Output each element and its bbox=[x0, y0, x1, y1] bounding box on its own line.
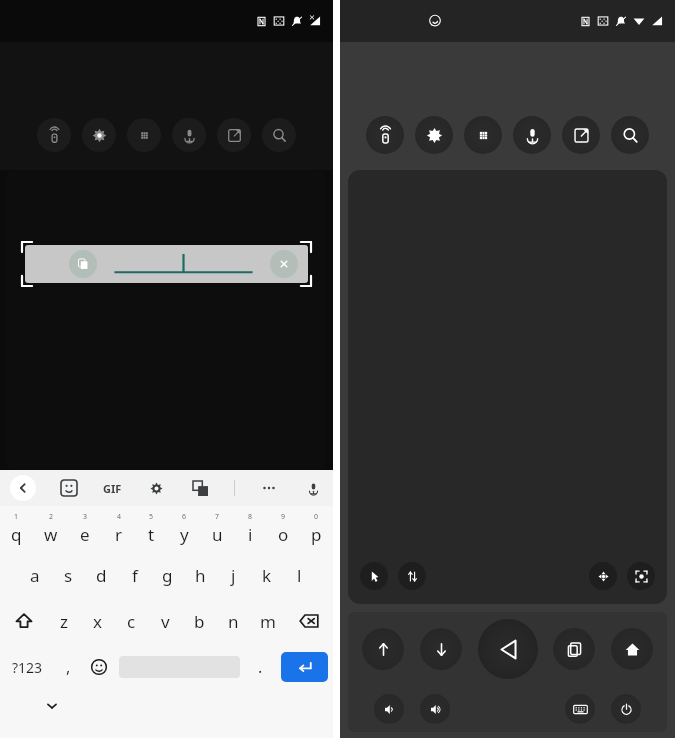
staticText: e bbox=[80, 523, 90, 546]
staticText: GIF bbox=[103, 481, 122, 496]
staticText: c bbox=[127, 610, 136, 633]
button[interactable]: Home bbox=[611, 628, 653, 670]
button[interactable]: Back bbox=[478, 619, 538, 679]
button[interactable]: Paste bbox=[25, 245, 308, 283]
button[interactable]: z bbox=[47, 598, 80, 644]
button[interactable]: Voice input bbox=[303, 478, 323, 498]
button[interactable]: n bbox=[217, 598, 250, 644]
button[interactable]: Voice bbox=[513, 116, 551, 154]
staticText: 7 bbox=[215, 512, 220, 522]
button[interactable]: Clear bbox=[270, 250, 298, 278]
staticText: d bbox=[96, 564, 107, 587]
button[interactable]: 5 bbox=[135, 506, 168, 552]
staticText: y bbox=[180, 523, 189, 546]
staticText: q bbox=[11, 523, 22, 546]
button[interactable]: D-pad bbox=[589, 562, 617, 590]
staticText: m bbox=[260, 610, 276, 633]
button[interactable]: Volume down bbox=[374, 694, 404, 724]
button[interactable]: Recents bbox=[553, 628, 595, 670]
button[interactable]: Hide keyboard bbox=[40, 694, 64, 718]
button[interactable]: g bbox=[151, 552, 184, 598]
button[interactable]: Open bbox=[562, 116, 600, 154]
button[interactable]: 2 bbox=[34, 506, 67, 552]
button[interactable]: Open bbox=[217, 118, 251, 152]
button[interactable]: 3 bbox=[68, 506, 101, 552]
button[interactable]: Scroll mode bbox=[398, 562, 426, 590]
button[interactable]: Focus bbox=[627, 562, 655, 590]
button[interactable]: ?123 bbox=[0, 644, 54, 690]
button[interactable]: Keyboard bbox=[565, 694, 595, 724]
staticText: w bbox=[44, 523, 58, 546]
button[interactable]: Search bbox=[262, 118, 296, 152]
button[interactable]: j bbox=[217, 552, 250, 598]
button[interactable]: m bbox=[251, 598, 284, 644]
button[interactable]: Emoji bbox=[83, 644, 115, 690]
staticText: f bbox=[132, 564, 138, 587]
button[interactable]: Remote bbox=[37, 118, 71, 152]
button[interactable]: Down bbox=[420, 628, 462, 670]
button[interactable]: 8 bbox=[234, 506, 267, 552]
button[interactable]: Settings bbox=[82, 118, 116, 152]
button[interactable]: d bbox=[85, 552, 118, 598]
button[interactable]: a bbox=[18, 552, 51, 598]
button[interactable]: Remote bbox=[366, 116, 404, 154]
staticText: 6 bbox=[182, 512, 187, 522]
button[interactable]: GIF bbox=[103, 481, 122, 496]
staticText: ?123 bbox=[12, 658, 43, 677]
button[interactable]: b bbox=[183, 598, 216, 644]
button[interactable]: Apps bbox=[127, 118, 161, 152]
staticText: 2 bbox=[49, 512, 54, 522]
button[interactable]: 6 bbox=[168, 506, 201, 552]
button[interactable]: Cursor mode bbox=[360, 562, 388, 590]
button[interactable]: , bbox=[54, 644, 83, 690]
button[interactable]: 1 bbox=[0, 506, 33, 552]
button[interactable]: 7 bbox=[201, 506, 234, 552]
button[interactable]: 4 bbox=[102, 506, 135, 552]
staticText: 0 bbox=[314, 512, 319, 522]
button[interactable]: Up bbox=[362, 628, 404, 670]
staticText: 4 bbox=[117, 512, 122, 522]
button[interactable]: x bbox=[81, 598, 114, 644]
staticText: , bbox=[66, 656, 71, 678]
staticText: v bbox=[161, 610, 170, 633]
staticText: h bbox=[195, 564, 206, 587]
button[interactable]: More bbox=[259, 478, 279, 498]
staticText: t bbox=[148, 523, 155, 546]
button[interactable]: s bbox=[52, 552, 85, 598]
button[interactable]: Voice bbox=[172, 118, 206, 152]
button[interactable]: l bbox=[283, 552, 316, 598]
staticText: u bbox=[212, 523, 223, 546]
staticText: 3 bbox=[83, 512, 88, 522]
staticText: . bbox=[258, 656, 263, 678]
button[interactable]: Apps bbox=[464, 116, 502, 154]
button[interactable]: Backspace bbox=[285, 598, 333, 644]
button[interactable]: Power bbox=[611, 694, 641, 724]
button[interactable]: Stickers bbox=[59, 478, 79, 498]
button[interactable]: . bbox=[244, 644, 276, 690]
button[interactable]: Enter bbox=[281, 652, 328, 682]
button[interactable]: v bbox=[149, 598, 182, 644]
button[interactable]: 9 bbox=[267, 506, 300, 552]
button[interactable]: Keyboard settings bbox=[146, 478, 166, 498]
button[interactable]: h bbox=[184, 552, 217, 598]
staticText: 9 bbox=[281, 512, 286, 522]
button[interactable]: Search bbox=[611, 116, 649, 154]
button[interactable]: Volume up bbox=[420, 694, 450, 724]
button[interactable]: k bbox=[250, 552, 283, 598]
staticText: o bbox=[278, 523, 289, 546]
staticText: k bbox=[262, 564, 272, 587]
button[interactable]: Settings bbox=[415, 116, 453, 154]
button[interactable]: f bbox=[118, 552, 151, 598]
button[interactable]: Translate bbox=[190, 478, 210, 498]
staticText: z bbox=[60, 610, 68, 633]
button[interactable]: Shift bbox=[0, 598, 47, 644]
staticText: 1 bbox=[14, 512, 19, 522]
button[interactable]: Back bbox=[10, 475, 36, 501]
staticText: i bbox=[248, 523, 253, 546]
button[interactable]: 0 bbox=[300, 506, 333, 552]
button[interactable]: c bbox=[115, 598, 148, 644]
staticText: 5 bbox=[149, 512, 154, 522]
button[interactable]: Paste bbox=[69, 250, 97, 278]
staticText: p bbox=[311, 523, 322, 546]
